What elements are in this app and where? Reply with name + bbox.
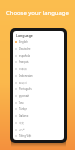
button[interactable]: Deutsche [13, 45, 64, 52]
button[interactable]: española [13, 52, 64, 59]
button[interactable]: 日本語 [13, 65, 64, 72]
staticText: 한국어 [19, 81, 27, 84]
staticText: Deutsche [19, 47, 31, 51]
button[interactable]: 한국어 [13, 79, 64, 86]
staticText: ไทย [19, 101, 24, 105]
staticText: français [19, 60, 29, 64]
staticText: русский [19, 94, 29, 98]
button[interactable]: ไทย [13, 99, 64, 106]
button[interactable]: 中文 [13, 119, 64, 126]
staticText: English [19, 40, 28, 44]
staticText: 中文 [19, 121, 25, 124]
staticText: Language [16, 33, 33, 38]
button[interactable]: Tiếng Việt [13, 132, 64, 139]
button[interactable]: русский [13, 92, 64, 99]
staticText: Português [19, 87, 32, 91]
button[interactable]: Italiano [13, 112, 64, 119]
button[interactable]: Português [13, 85, 64, 92]
button[interactable]: عربي [13, 126, 64, 133]
button[interactable]: Indonesian [13, 72, 64, 79]
staticText: española [19, 54, 31, 58]
staticText: عربي [19, 128, 25, 131]
button[interactable]: English [13, 38, 64, 45]
staticText: Indonesian [19, 74, 33, 78]
button[interactable]: français [13, 58, 64, 65]
staticText: 日本語 [19, 67, 27, 70]
staticText: Tiếng Việt [19, 134, 32, 138]
staticText: Türkçe [19, 107, 28, 111]
staticText: Choose your language [6, 9, 69, 17]
staticText: Italiano [19, 114, 29, 118]
button[interactable]: Türkçe [13, 105, 64, 112]
